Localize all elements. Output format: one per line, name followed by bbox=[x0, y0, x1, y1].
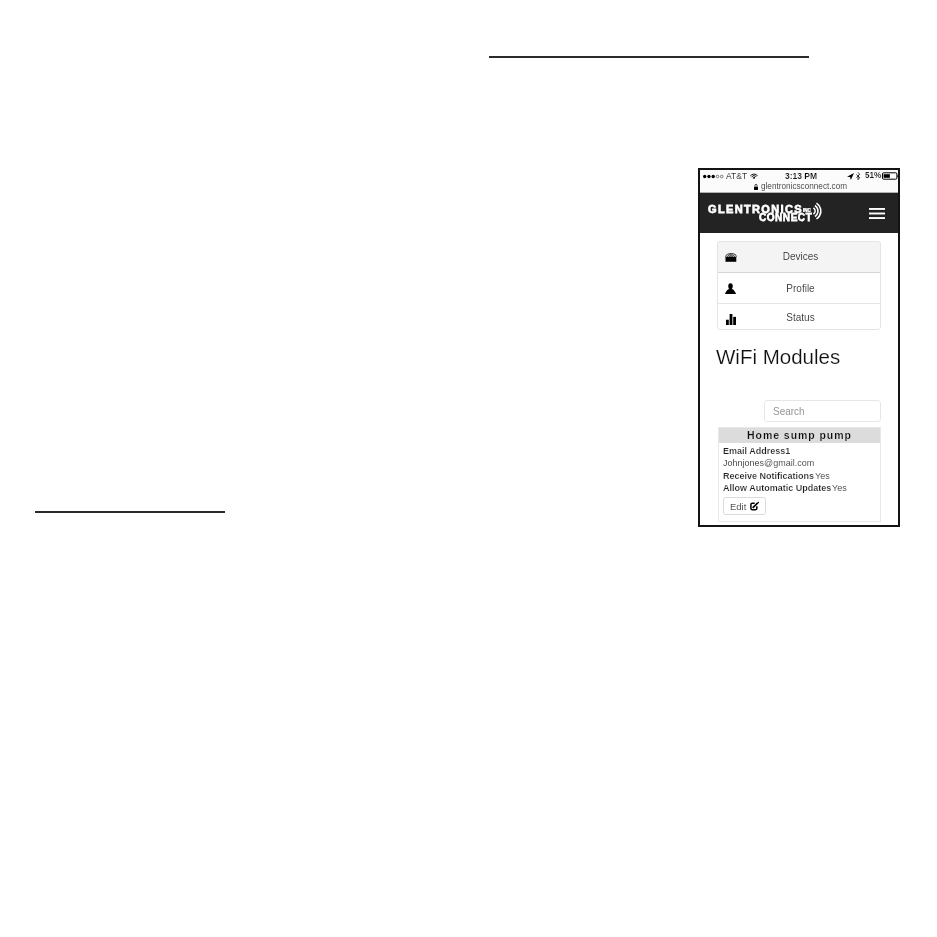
staticText: glentronicsconnect.com bbox=[761, 182, 848, 191]
staticText: Allow Automatic Updates bbox=[723, 483, 832, 493]
staticText: Email Address1 bbox=[723, 446, 791, 456]
staticText: Edit bbox=[730, 501, 747, 512]
button[interactable]: Edit bbox=[723, 497, 766, 515]
staticText: Johnjones@gmail.com bbox=[723, 458, 815, 468]
button[interactable]: Profile bbox=[717, 273, 881, 303]
button[interactable]: Status bbox=[717, 304, 881, 330]
staticText: Profile bbox=[744, 283, 857, 294]
button[interactable]: Glentronics Connect home bbox=[708, 203, 824, 221]
staticText: GLENTRONICS bbox=[708, 203, 803, 215]
staticText: Devices bbox=[744, 251, 857, 262]
staticText: Search bbox=[773, 406, 805, 417]
staticText: 51% bbox=[865, 171, 882, 180]
button[interactable]: Devices bbox=[717, 241, 881, 272]
staticText: Yes bbox=[832, 483, 847, 493]
staticText: 3:13 PM bbox=[785, 171, 818, 180]
staticText: AT&T bbox=[726, 171, 748, 180]
staticText: Status bbox=[744, 312, 857, 323]
staticText: WiFi Modules bbox=[716, 345, 841, 368]
button[interactable]: Search bbox=[764, 400, 881, 422]
staticText: Yes bbox=[815, 471, 830, 481]
staticText: Home sump pump bbox=[747, 429, 852, 441]
staticText: Receive Notifications bbox=[723, 471, 815, 481]
staticText: CONNECT bbox=[759, 212, 813, 223]
button[interactable]: Open navigation menu bbox=[864, 200, 890, 226]
staticText: INC bbox=[803, 208, 811, 213]
